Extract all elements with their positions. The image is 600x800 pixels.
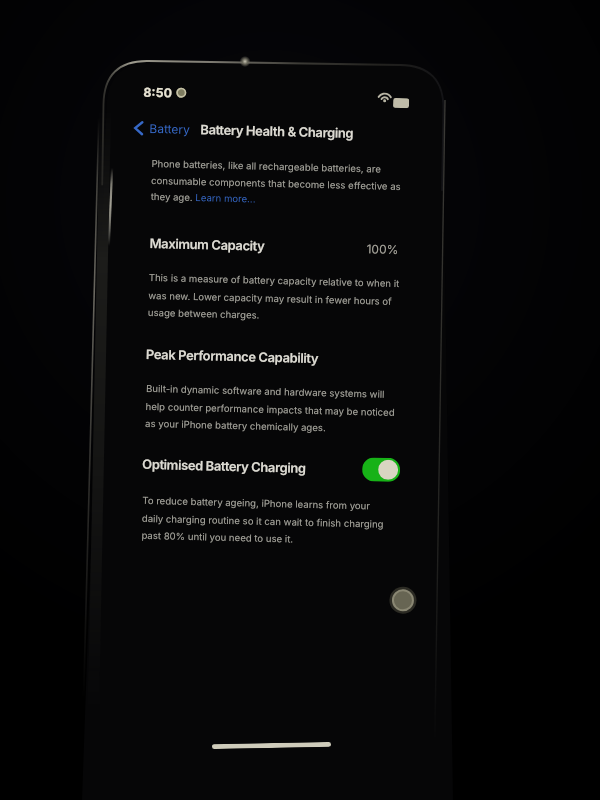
button[interactable]: Optimised Battery Charging [362,457,400,482]
staticText: This is a measure of battery capacity re… [148,272,405,324]
staticText: Maximum Capacity [149,235,265,254]
other: Wi-Fi [378,89,391,103]
button[interactable]: Battery [133,115,191,141]
staticText: Battery Health & Charging [200,121,353,141]
other: Battery [393,98,409,108]
staticText: Battery [149,121,191,137]
button[interactable]: Maximum Capacity [149,234,399,258]
staticText: 100% [366,241,399,257]
staticText: To reduce battery ageing, iPhone learns … [141,495,392,547]
button[interactable]: Phone batteries, like all rechargeable b… [151,158,408,208]
staticText: Phone batteries, like all rechargeable b… [151,158,408,208]
button[interactable]: Peak Performance Capability [146,346,319,366]
staticText: Built-in dynamic software and hardware s… [145,383,402,435]
staticText: 8:50 [143,85,172,100]
staticText: Optimised Battery Charging [142,456,306,476]
